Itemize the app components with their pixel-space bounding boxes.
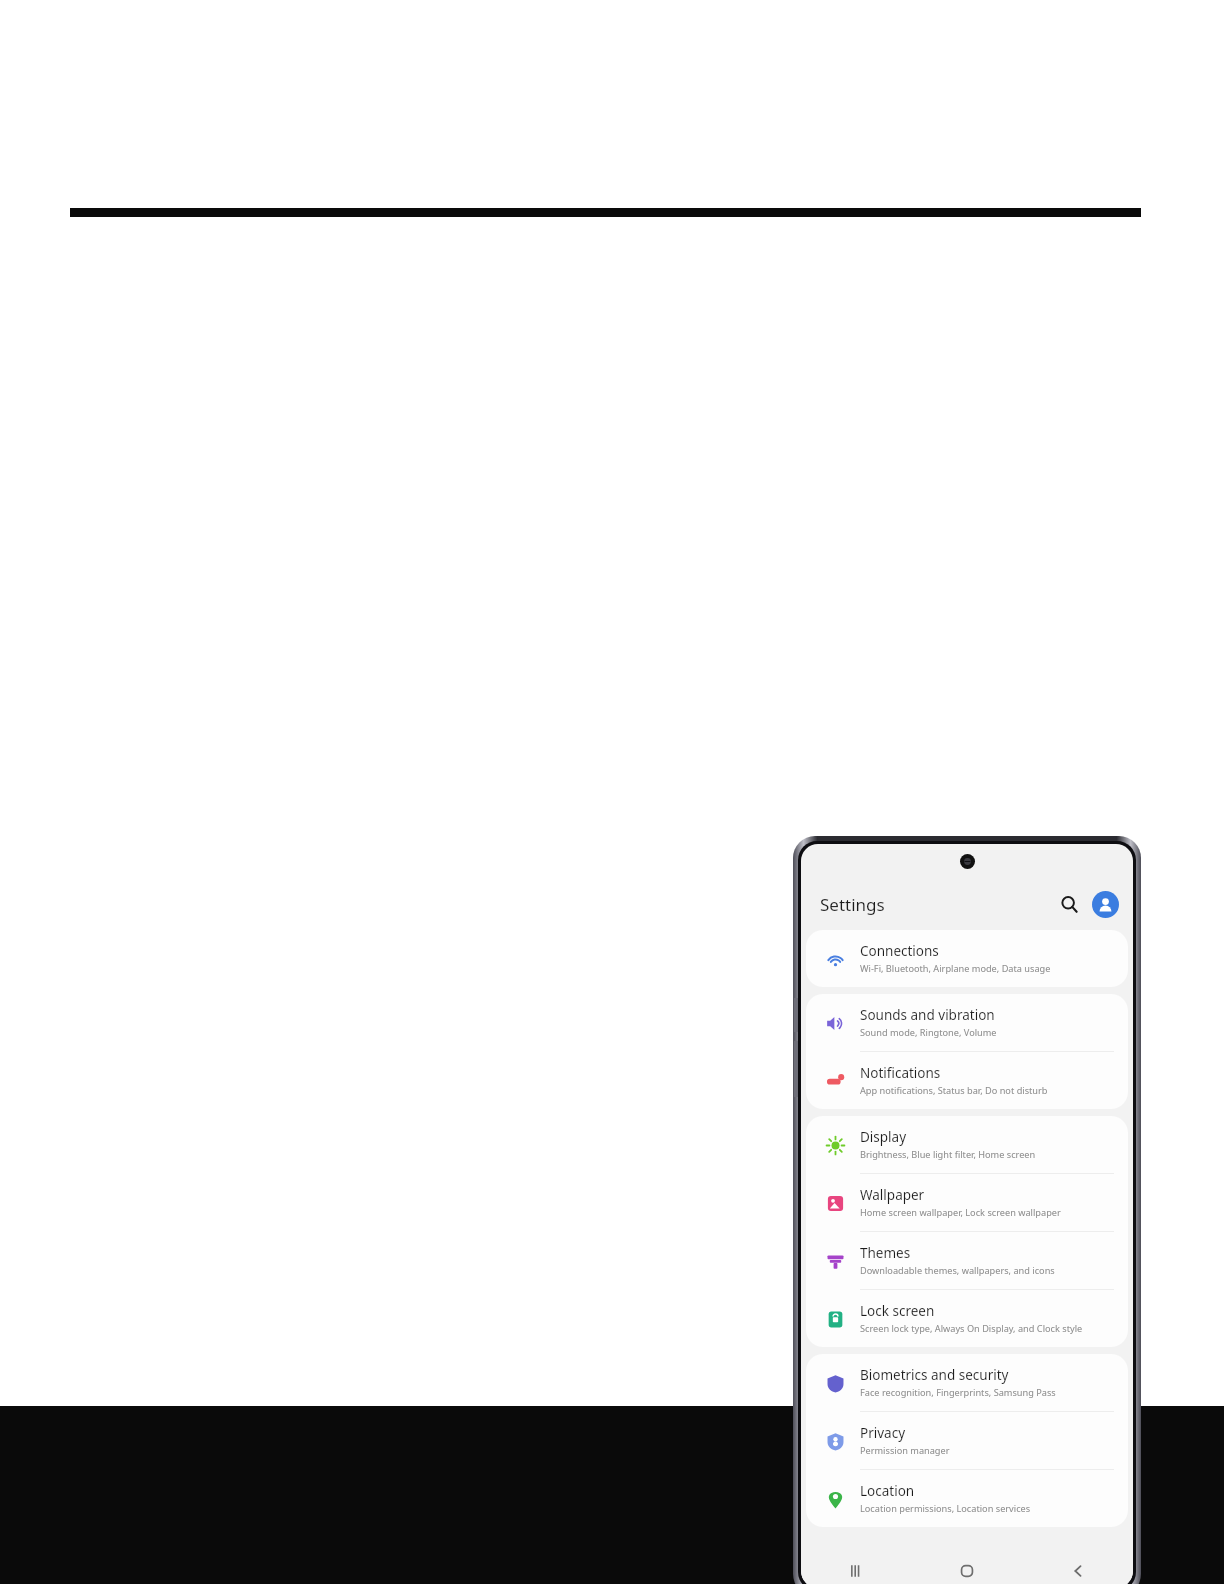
staticText: App notifications, Status bar, Do not di… [860,1084,1048,1097]
staticText: Downloadable themes, wallpapers, and ico… [860,1264,1055,1277]
staticText: Lock screen [860,1302,935,1320]
button[interactable]: Location [806,1470,1128,1527]
staticText: Wi-Fi, Bluetooth, Airplane mode, Data us… [860,962,1051,975]
button[interactable]: Account [1092,891,1119,918]
button[interactable]: Notifications [806,1052,1128,1109]
staticText: Notifications [860,1064,941,1082]
staticText: Sound mode, Ringtone, Volume [860,1026,997,1039]
button[interactable]: Lock screen [806,1290,1128,1347]
staticText: Connections [860,942,939,960]
staticText: Wallpaper [860,1186,925,1204]
button[interactable]: Connections [806,930,1128,987]
staticText: Privacy [860,1424,906,1442]
staticText: Location permissions, Location services [860,1502,1031,1515]
button[interactable]: Biometrics and security [806,1354,1128,1411]
button[interactable]: Home [911,1554,1022,1584]
button[interactable]: Themes [806,1232,1128,1289]
staticText: Sounds and vibration [860,1006,995,1024]
button[interactable]: Display [806,1116,1128,1173]
staticText: Face recognition, Fingerprints, Samsung … [860,1386,1056,1399]
button[interactable]: Sounds and vibration [806,994,1128,1051]
staticText: Display [860,1128,907,1146]
staticText: Themes [860,1244,911,1262]
staticText: Home screen wallpaper, Lock screen wallp… [860,1206,1061,1219]
staticText: Settings [820,893,885,916]
staticText: Brightness, Blue light filter, Home scre… [860,1148,1036,1161]
button[interactable]: Recents [801,1554,911,1584]
button[interactable]: Back [1022,1554,1133,1584]
staticText: Permission manager [860,1444,950,1457]
staticText: Screen lock type, Always On Display, and… [860,1322,1083,1335]
button[interactable]: Privacy [806,1412,1128,1469]
staticText: Location [860,1482,915,1500]
button[interactable]: Search [1054,889,1084,919]
staticText: Biometrics and security [860,1366,1009,1384]
button[interactable]: Wallpaper [806,1174,1128,1231]
